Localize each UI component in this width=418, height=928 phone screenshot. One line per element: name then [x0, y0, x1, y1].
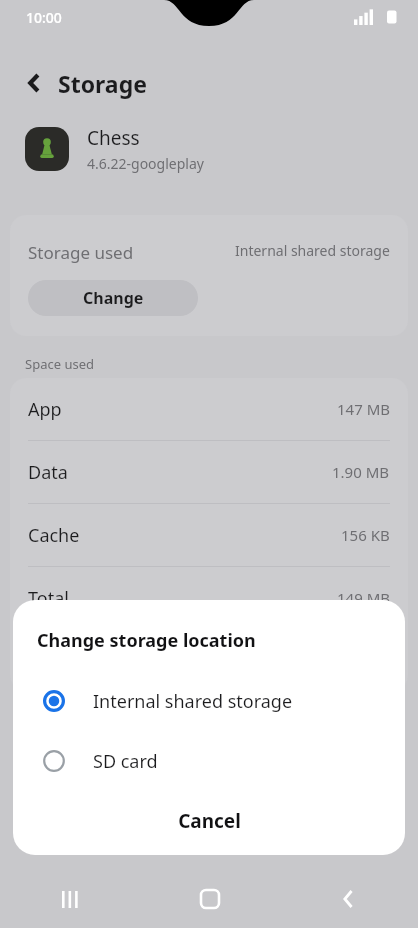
staticText: Chess [87, 125, 140, 151]
button[interactable]: SD card [13, 731, 405, 791]
staticText: Internal shared storage [93, 689, 293, 714]
button[interactable]: Recents [0, 870, 140, 928]
button[interactable]: Back [18, 66, 52, 100]
button[interactable]: Internal shared storage [13, 671, 405, 731]
staticText: Change [83, 287, 144, 309]
button[interactable]: Clear data [10, 629, 209, 691]
button[interactable]: Home [140, 870, 279, 928]
staticText: App [28, 397, 62, 422]
staticText: Data [28, 460, 68, 485]
staticText: 149 MB [337, 588, 390, 608]
button[interactable]: Back [279, 870, 418, 928]
button[interactable]: App [10, 378, 408, 440]
staticText: 10:00 [26, 8, 62, 27]
staticText: 1.90 MB [332, 462, 390, 482]
staticText: Storage [58, 68, 147, 99]
button[interactable]: Change [28, 280, 198, 316]
staticText: Storage used [28, 241, 134, 264]
button[interactable]: Cache [10, 504, 408, 566]
staticText: Clear data [74, 650, 146, 670]
button[interactable]: Data [10, 441, 408, 503]
staticText: Cache [28, 523, 80, 548]
button[interactable]: Total [10, 567, 408, 629]
button[interactable]: Clear cache [209, 629, 408, 691]
staticText: Total [28, 586, 69, 611]
staticText: SD card [93, 749, 158, 774]
staticText: Space used [25, 355, 94, 373]
staticText: Cancel [178, 808, 241, 834]
staticText: Change storage location [37, 628, 256, 653]
staticText: Internal shared storage [235, 241, 390, 260]
button[interactable]: Cancel [13, 795, 405, 847]
staticText: 4.6.22-googleplay [87, 154, 204, 173]
staticText: 156 KB [341, 525, 390, 545]
staticText: 147 MB [337, 399, 390, 419]
